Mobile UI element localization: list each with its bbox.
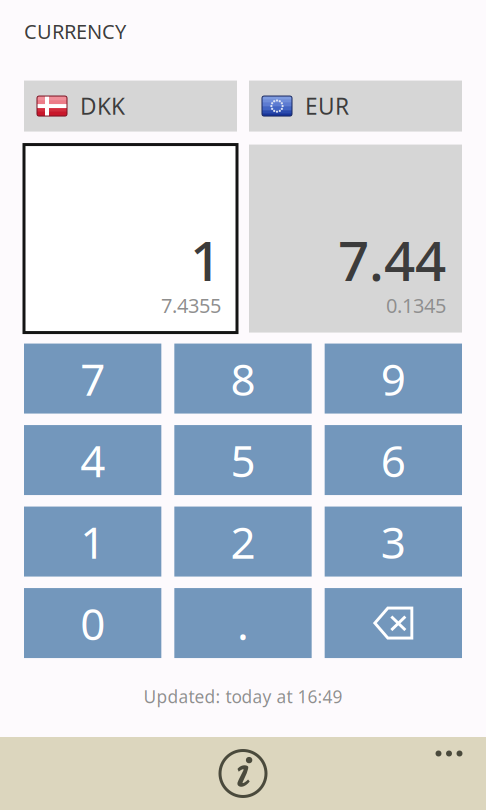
button[interactable]: 2 bbox=[174, 507, 312, 577]
staticText: . bbox=[237, 594, 249, 652]
button[interactable]: More options bbox=[423, 738, 486, 768]
button[interactable]: 7.44 bbox=[249, 145, 462, 333]
staticText: 7.44 bbox=[338, 223, 446, 296]
staticText: 4 bbox=[80, 431, 105, 489]
staticText: CURRENCY bbox=[24, 18, 126, 45]
staticText: DKK bbox=[80, 91, 125, 121]
button[interactable]: 7 bbox=[24, 344, 161, 414]
staticText: 5 bbox=[230, 431, 255, 489]
button[interactable]: 9 bbox=[325, 344, 462, 414]
button[interactable]: 5 bbox=[174, 425, 312, 495]
button[interactable] bbox=[325, 588, 462, 658]
staticText: 7 bbox=[80, 349, 105, 408]
staticText: 6 bbox=[381, 431, 406, 489]
staticText: Updated: today at 16:49 bbox=[143, 685, 342, 708]
staticText: EUR bbox=[305, 91, 349, 121]
button[interactable]: 0 bbox=[24, 588, 161, 658]
button[interactable]: EUR bbox=[249, 81, 462, 132]
button[interactable]: . bbox=[174, 588, 312, 658]
button[interactable]: 1 bbox=[24, 507, 161, 577]
button[interactable]: DKK bbox=[24, 81, 237, 132]
staticText: 8 bbox=[230, 349, 255, 408]
staticText: 9 bbox=[381, 349, 406, 408]
staticText: 2 bbox=[230, 512, 255, 571]
staticText: 1 bbox=[190, 223, 221, 296]
button[interactable]: About this app bbox=[211, 741, 275, 805]
staticText: 0.1345 bbox=[386, 292, 446, 319]
button[interactable]: 6 bbox=[325, 425, 462, 495]
button[interactable]: 3 bbox=[325, 507, 462, 577]
staticText: 1 bbox=[80, 512, 105, 571]
staticText: 3 bbox=[381, 512, 406, 571]
button[interactable]: 8 bbox=[174, 344, 312, 414]
button[interactable]: 4 bbox=[24, 425, 161, 495]
staticText: 0 bbox=[80, 594, 105, 652]
button[interactable]: 1 bbox=[24, 145, 237, 333]
staticText: 7.4355 bbox=[161, 292, 221, 319]
